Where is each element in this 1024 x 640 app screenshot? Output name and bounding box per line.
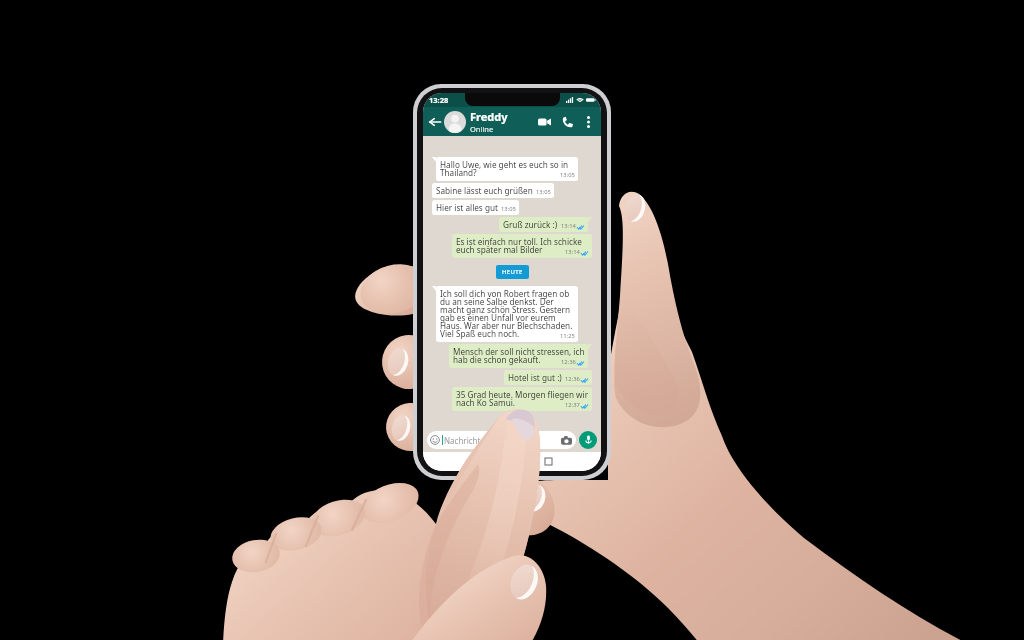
staticText: Freddy	[470, 109, 508, 124]
button[interactable]: Ich soll dich von Robert fragen ob du an…	[436, 286, 578, 342]
button[interactable]: Video call	[536, 114, 552, 130]
staticText: 13:14	[561, 222, 576, 230]
staticText: Mensch der soll nicht stressen, ich hab …	[453, 346, 585, 366]
staticText: Online	[470, 124, 494, 134]
button[interactable]: Sabine lässt euch grüßen	[432, 183, 554, 198]
staticText: 35 Grad heute. Morgen fliegen wir nach K…	[456, 389, 589, 409]
staticText: 13:05	[501, 205, 516, 213]
button[interactable]: Hallo Uwe, wie geht es euch so in Thaila…	[436, 157, 578, 181]
staticText: 13:14	[565, 248, 580, 256]
button[interactable]: Record voice message	[579, 431, 597, 449]
staticText: 13:28	[429, 95, 449, 105]
button[interactable]: Mensch der soll nicht stressen, ich hab …	[449, 344, 588, 368]
staticText: Ich soll dich von Robert fragen ob du an…	[440, 288, 575, 340]
staticText: Nachricht	[444, 435, 481, 446]
button[interactable]: Camera	[559, 433, 573, 447]
button[interactable]: Call	[559, 114, 575, 130]
staticText: Gruß zurück :)	[503, 219, 558, 230]
button[interactable]: 35 Grad heute. Morgen fliegen wir nach K…	[452, 387, 592, 411]
button[interactable]: Nachricht	[427, 431, 576, 449]
staticText: Hallo Uwe, wie geht es euch so in Thaila…	[440, 159, 575, 179]
staticText: Hotel ist gut :)	[508, 372, 562, 383]
staticText: 12:36	[561, 358, 576, 366]
staticText: Sabine lässt euch grüßen	[436, 185, 533, 196]
staticText: HEUTE	[502, 268, 523, 276]
staticText: 12:36	[565, 375, 580, 383]
staticText: Es ist einfach nur toll. Ich schicke euc…	[456, 236, 589, 256]
staticText: 12:37	[565, 401, 580, 409]
button[interactable]: Hotel ist gut :)	[504, 370, 592, 385]
button[interactable]: Gruß zurück :)	[499, 217, 588, 232]
button[interactable]: Es ist einfach nur toll. Ich schicke euc…	[452, 234, 592, 258]
staticText: 11:25	[560, 332, 575, 340]
staticText: 13:05	[536, 188, 551, 196]
button[interactable]: Back	[427, 114, 442, 129]
staticText: Hier ist alles gut	[436, 202, 498, 213]
button[interactable]: Hier ist alles gut	[432, 200, 519, 215]
button[interactable]: More options	[582, 115, 595, 128]
staticText: 13:05	[560, 171, 575, 179]
button[interactable]: HEUTE	[496, 265, 529, 279]
button[interactable]	[444, 111, 466, 133]
